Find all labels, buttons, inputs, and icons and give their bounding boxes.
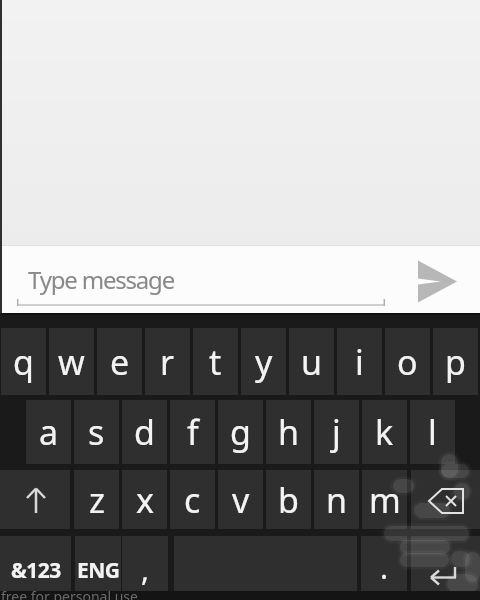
button[interactable]: &123 bbox=[0, 536, 71, 591]
button[interactable] bbox=[411, 470, 480, 529]
staticText: k bbox=[375, 409, 394, 455]
button[interactable]: e bbox=[97, 328, 142, 395]
staticText: l bbox=[428, 409, 437, 455]
staticText: g bbox=[230, 409, 251, 455]
staticText: j bbox=[332, 409, 341, 455]
staticText: s bbox=[88, 409, 105, 455]
button[interactable]: . bbox=[361, 536, 407, 591]
button[interactable]: i bbox=[337, 328, 382, 395]
staticText: w bbox=[58, 339, 85, 385]
button[interactable]: z bbox=[74, 470, 119, 529]
staticText: e bbox=[110, 339, 130, 385]
button[interactable]: w bbox=[49, 328, 94, 395]
button[interactable]: m bbox=[362, 470, 407, 529]
staticText: r bbox=[160, 339, 175, 385]
staticText: t bbox=[209, 339, 222, 385]
button[interactable]: d bbox=[122, 400, 167, 464]
button[interactable]: c bbox=[170, 470, 215, 529]
button[interactable]: j bbox=[314, 400, 359, 464]
button[interactable]: ENG bbox=[75, 536, 121, 591]
staticText: v bbox=[232, 477, 250, 523]
button[interactable]: v bbox=[218, 470, 263, 529]
button[interactable]: l bbox=[410, 400, 455, 464]
staticText: , bbox=[141, 549, 150, 590]
button[interactable] bbox=[0, 470, 70, 529]
button[interactable]: r bbox=[145, 328, 190, 395]
staticText: b bbox=[278, 477, 299, 523]
staticText: &123 bbox=[11, 556, 61, 585]
button[interactable]: n bbox=[314, 470, 359, 529]
button[interactable]: Type message bbox=[0, 246, 400, 313]
staticText: q bbox=[13, 339, 34, 385]
staticText: ENG bbox=[77, 556, 120, 585]
button[interactable]: s bbox=[74, 400, 119, 464]
button[interactable]: f bbox=[170, 400, 215, 464]
staticText: f bbox=[187, 409, 199, 455]
staticText: u bbox=[301, 339, 323, 385]
button[interactable]: o bbox=[385, 328, 430, 395]
button[interactable]: g bbox=[218, 400, 263, 464]
button[interactable]: p bbox=[433, 328, 478, 395]
staticText: x bbox=[136, 477, 154, 523]
button[interactable]: k bbox=[362, 400, 407, 464]
staticText: n bbox=[326, 477, 348, 523]
staticText: o bbox=[397, 339, 418, 385]
button[interactable]: y bbox=[241, 328, 286, 395]
button[interactable]: b bbox=[266, 470, 311, 529]
staticText: z bbox=[89, 477, 105, 523]
staticText: a bbox=[39, 409, 59, 455]
staticText: free for personal use bbox=[1, 587, 138, 600]
button[interactable]: q bbox=[1, 328, 46, 395]
staticText: c bbox=[184, 477, 201, 523]
button[interactable]: a bbox=[26, 400, 71, 464]
staticText: h bbox=[278, 409, 300, 455]
staticText: p bbox=[445, 339, 466, 385]
staticText: Type message bbox=[28, 263, 174, 296]
button[interactable] bbox=[411, 536, 480, 591]
button[interactable]: t bbox=[193, 328, 238, 395]
staticText: y bbox=[255, 339, 273, 385]
staticText: d bbox=[134, 409, 155, 455]
button[interactable]: , bbox=[122, 536, 168, 591]
staticText: m bbox=[369, 477, 401, 523]
button[interactable] bbox=[400, 246, 480, 313]
staticText: i bbox=[355, 339, 364, 385]
button[interactable]: x bbox=[122, 470, 167, 529]
staticText: . bbox=[380, 547, 389, 588]
button[interactable]: u bbox=[289, 328, 334, 395]
button[interactable]: h bbox=[266, 400, 311, 464]
